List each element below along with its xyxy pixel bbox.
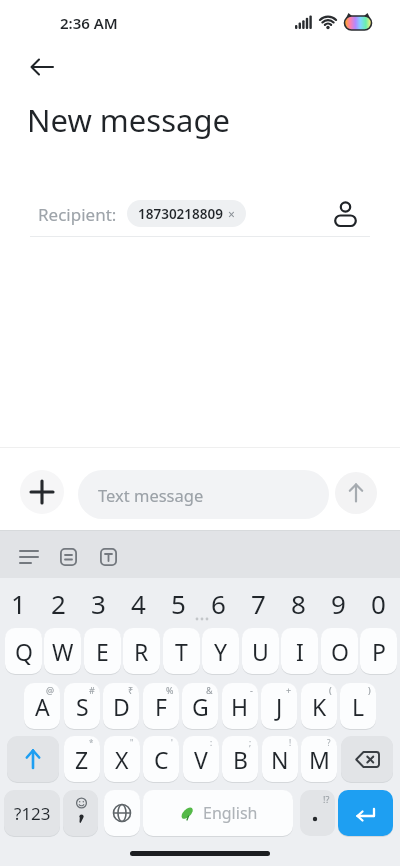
button[interactable]: 8 xyxy=(278,584,318,622)
button[interactable]: Z xyxy=(64,736,100,782)
button[interactable]: !? xyxy=(300,790,335,836)
button[interactable]: R xyxy=(123,628,160,674)
staticText: F xyxy=(155,691,167,722)
staticText: H xyxy=(231,691,249,722)
staticText: T xyxy=(175,636,188,667)
staticText: W xyxy=(52,636,74,667)
button[interactable] xyxy=(30,56,54,78)
staticText: V xyxy=(194,744,208,775)
button[interactable]: 2 xyxy=(38,584,78,622)
staticText: @ xyxy=(46,684,55,696)
staticText: 6 xyxy=(211,586,226,621)
button[interactable]: A xyxy=(24,683,60,729)
button[interactable]: G xyxy=(182,683,218,729)
button[interactable]: H xyxy=(222,683,258,729)
button[interactable]: Text message xyxy=(78,470,329,519)
staticText: L xyxy=(352,691,365,722)
button[interactable]: 18730218809 xyxy=(127,200,246,227)
staticText: O xyxy=(331,636,349,667)
staticText: 0 xyxy=(371,586,386,621)
button[interactable]: 5 xyxy=(158,584,198,622)
staticText: E xyxy=(96,636,109,667)
staticText: ' xyxy=(171,737,173,748)
button[interactable] xyxy=(335,472,377,514)
button[interactable]: O xyxy=(321,628,358,674)
button[interactable] xyxy=(20,470,64,514)
button[interactable]: M xyxy=(301,736,337,782)
staticText: × xyxy=(228,206,235,222)
staticText: ?123 xyxy=(14,802,51,825)
staticText: 1 xyxy=(11,586,26,621)
staticText: ( xyxy=(329,684,332,696)
staticText: J xyxy=(276,691,283,722)
button[interactable]: T xyxy=(163,628,200,674)
button[interactable]: ?123 xyxy=(4,790,60,836)
staticText: I xyxy=(296,636,304,667)
staticText: U xyxy=(252,636,269,667)
button[interactable]: N xyxy=(262,736,298,782)
staticText: G xyxy=(192,691,209,722)
button[interactable]: B xyxy=(222,736,258,782)
button[interactable]: 9 xyxy=(318,584,358,622)
staticText: K xyxy=(312,691,327,722)
button[interactable]: I xyxy=(281,628,318,674)
staticText: !? xyxy=(323,793,330,805)
staticText: ; xyxy=(249,737,252,748)
button[interactable] xyxy=(104,790,140,836)
button[interactable]: U xyxy=(242,628,279,674)
button[interactable] xyxy=(130,851,270,856)
button[interactable]: D xyxy=(103,683,139,729)
staticText: % xyxy=(166,684,174,696)
staticText: 9 xyxy=(331,586,346,621)
button[interactable]: C xyxy=(143,736,179,782)
button[interactable]: 6 xyxy=(198,584,238,622)
button[interactable] xyxy=(341,736,393,782)
button[interactable] xyxy=(100,548,117,566)
button[interactable]: 4 xyxy=(118,584,158,622)
button[interactable]: F xyxy=(143,683,179,729)
staticText: Q xyxy=(15,636,33,667)
button[interactable]: L xyxy=(340,683,376,729)
button[interactable]: Q xyxy=(5,628,42,674)
button[interactable]: S xyxy=(64,683,100,729)
staticText: P xyxy=(372,636,386,667)
staticText: " xyxy=(130,737,134,748)
staticText: : xyxy=(210,737,213,748)
staticText: English xyxy=(203,802,258,824)
button[interactable]: V xyxy=(183,736,219,782)
staticText: Y xyxy=(214,636,228,667)
button[interactable] xyxy=(20,548,39,566)
button[interactable] xyxy=(333,200,358,226)
staticText: 2 xyxy=(51,586,66,621)
button[interactable]: P xyxy=(360,628,397,674)
button[interactable]: 1 xyxy=(0,584,38,622)
staticText: # xyxy=(89,684,95,696)
button[interactable] xyxy=(63,790,98,836)
staticText: 5 xyxy=(171,586,186,621)
button[interactable]: English xyxy=(143,790,293,836)
button[interactable]: 7 xyxy=(238,584,278,622)
staticText: M xyxy=(309,744,330,775)
button[interactable] xyxy=(60,548,77,566)
staticText: Recipient: xyxy=(38,203,117,226)
button[interactable]: 3 xyxy=(78,584,118,622)
staticText: N xyxy=(271,744,289,775)
button[interactable]: Y xyxy=(202,628,239,674)
staticText: 7 xyxy=(251,586,266,621)
staticText: S xyxy=(76,691,89,722)
staticText: B xyxy=(233,744,248,775)
button[interactable]: K xyxy=(301,683,337,729)
button[interactable]: E xyxy=(84,628,121,674)
button[interactable]: W xyxy=(44,628,81,674)
staticText: ₹ xyxy=(128,684,134,696)
button[interactable]: J xyxy=(261,683,297,729)
button[interactable] xyxy=(338,790,393,836)
staticText: Z xyxy=(75,744,89,775)
staticText: Text message xyxy=(98,484,204,506)
staticText: 4 xyxy=(131,586,146,621)
staticText: X xyxy=(115,744,129,775)
button[interactable]: 0 xyxy=(358,584,398,622)
staticText: ? xyxy=(327,737,331,748)
button[interactable] xyxy=(7,736,59,782)
button[interactable]: X xyxy=(104,736,140,782)
